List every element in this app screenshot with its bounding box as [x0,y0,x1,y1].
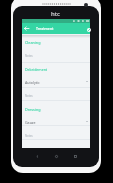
button[interactable]: Cleaning [25,38,90,46]
staticText: Autolytic [25,80,40,85]
button[interactable]: Dressing [25,105,90,113]
staticText: Treatment [36,26,54,31]
staticText: Cleaning [25,40,41,45]
button[interactable]: Autolytic [25,78,90,86]
staticText: Dressing [25,107,41,112]
button[interactable]: Notes [25,92,90,100]
staticText: htc [51,10,61,18]
button[interactable]: Edit [87,28,91,32]
button[interactable]: Home [52,152,60,160]
button[interactable]: Recents [71,152,79,160]
button[interactable]: Notes [25,52,90,60]
button[interactable]: Debridement [25,65,90,73]
button[interactable]: Gauze [25,118,90,126]
staticText: Notes [25,134,33,138]
staticText: Gauze [25,120,36,125]
button[interactable]: Back [22,24,31,33]
staticText: Notes [25,94,33,98]
button[interactable]: Back [33,152,41,160]
button[interactable]: Notes [25,132,90,140]
staticText: Notes [25,54,33,58]
staticText: Debridement [25,67,48,72]
